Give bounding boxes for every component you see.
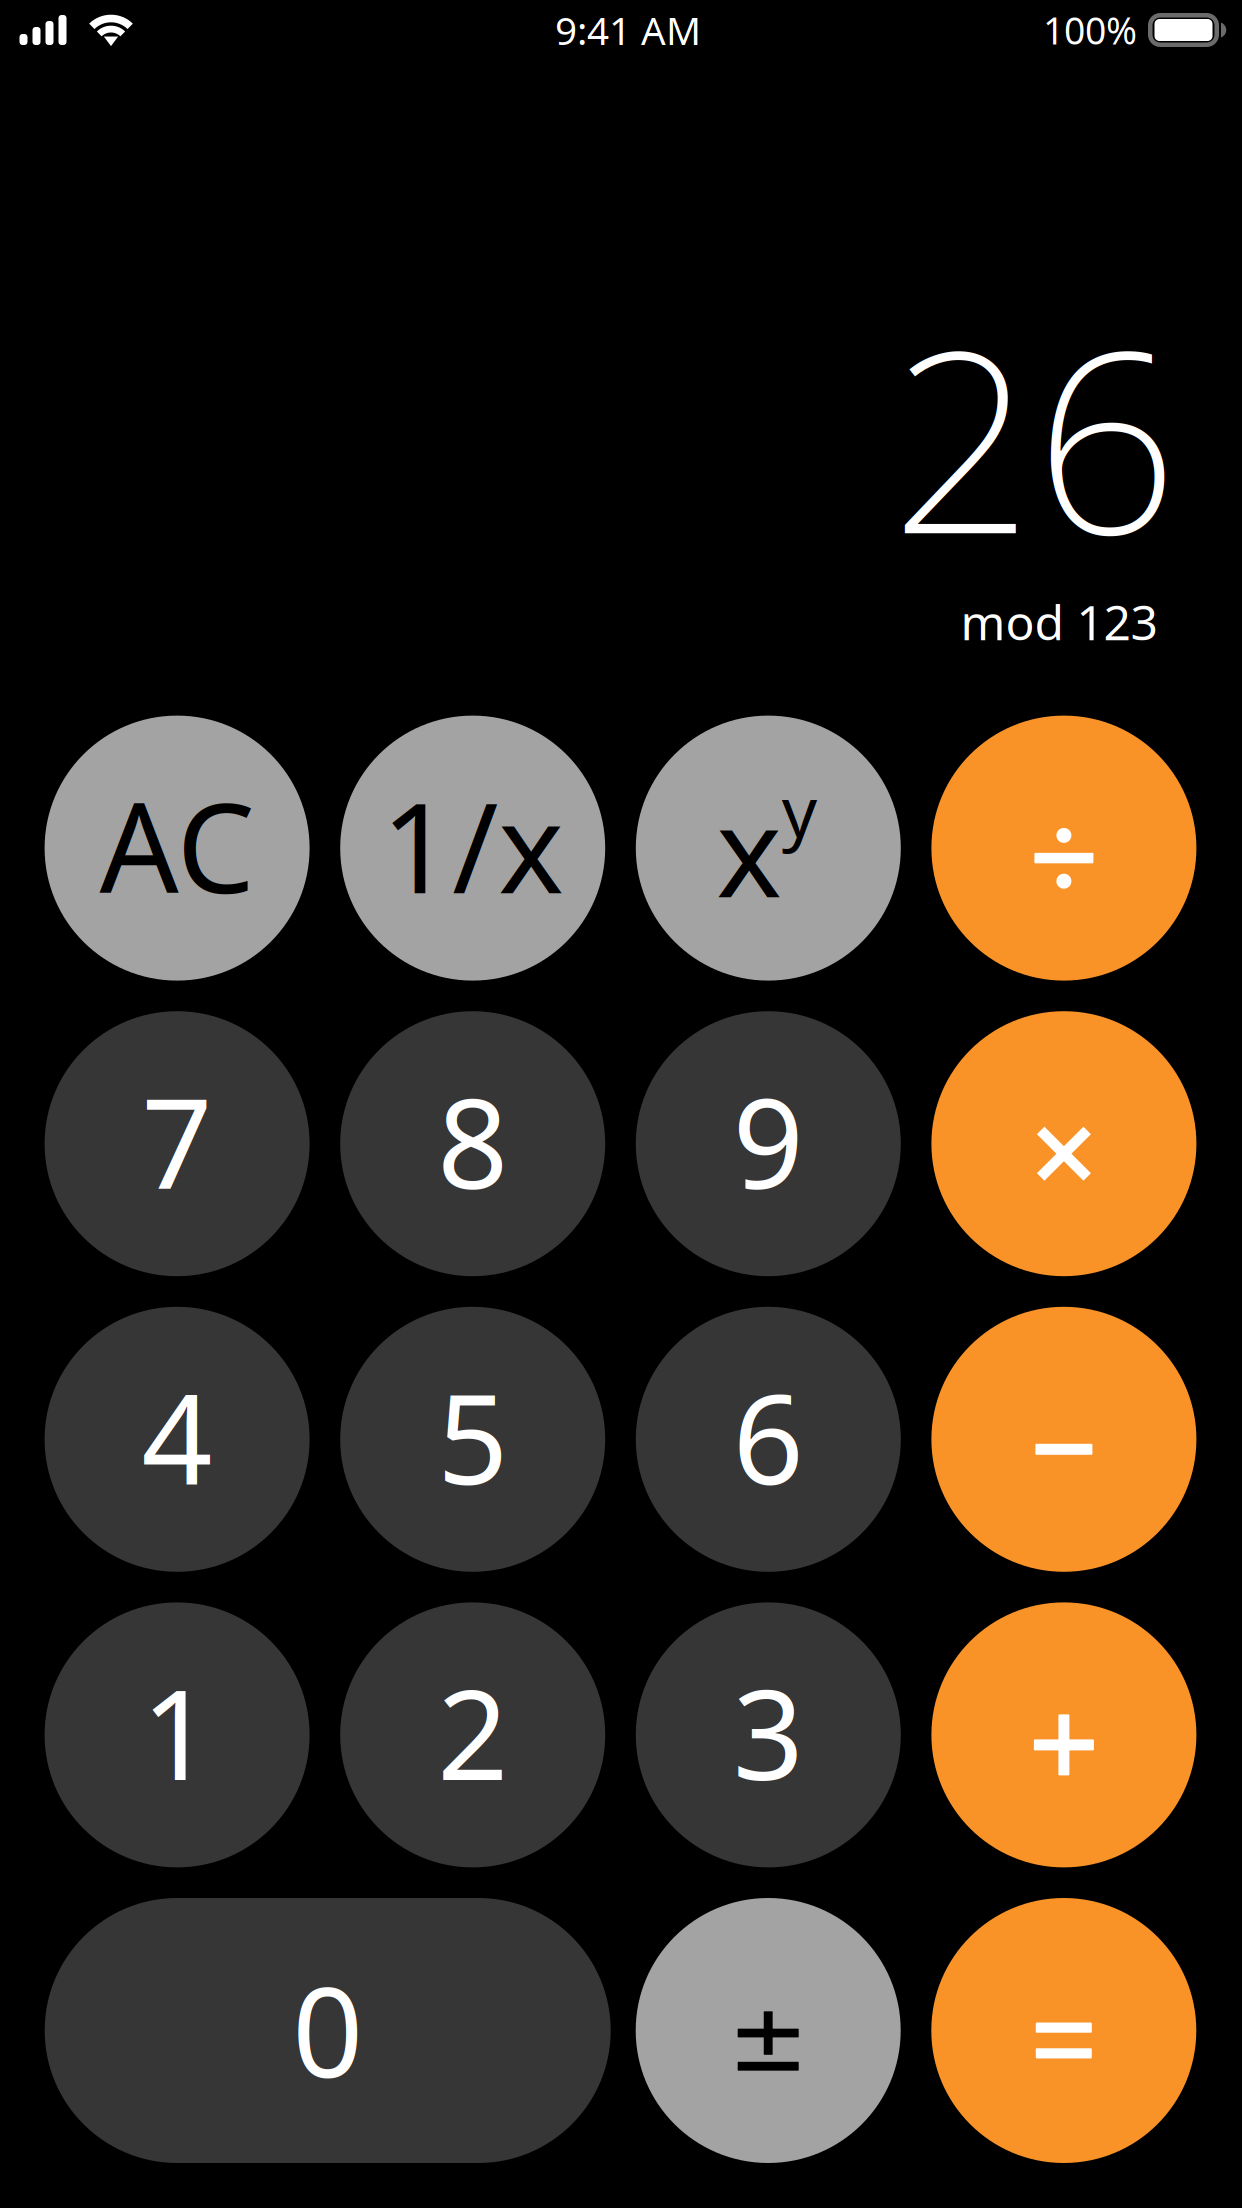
- staticText: mod 123: [960, 590, 1157, 654]
- staticText: x: [716, 767, 782, 931]
- button[interactable]: 1: [45, 1602, 310, 1867]
- staticText: 1/x: [381, 763, 564, 927]
- staticText: 6: [733, 1354, 804, 1519]
- button[interactable]: 1/x: [340, 716, 605, 981]
- button[interactable]: Toggle sign: [636, 1898, 901, 2163]
- button[interactable]: 8: [340, 1011, 605, 1276]
- button[interactable]: 5: [340, 1307, 605, 1572]
- button[interactable]: Subtract: [931, 1307, 1196, 1572]
- staticText: 4: [142, 1354, 213, 1519]
- staticText: 5: [437, 1354, 508, 1519]
- staticText: 0: [292, 1947, 363, 2112]
- staticText: 100%: [1043, 5, 1137, 55]
- staticText: y: [782, 764, 817, 856]
- button[interactable]: 2: [340, 1602, 605, 1867]
- button[interactable]: 6: [636, 1307, 901, 1572]
- button[interactable]: Add: [931, 1602, 1196, 1867]
- button[interactable]: 0: [45, 1898, 611, 2163]
- button[interactable]: Divide: [931, 716, 1196, 981]
- staticText: 8: [437, 1058, 508, 1223]
- button[interactable]: 7: [45, 1011, 310, 1276]
- staticText: 9:41 AM: [555, 4, 701, 56]
- button[interactable]: 3: [636, 1602, 901, 1867]
- button[interactable]: 9: [636, 1011, 901, 1276]
- staticText: AC: [100, 763, 255, 927]
- staticText: 7: [142, 1058, 213, 1223]
- button[interactable]: x: [636, 716, 901, 981]
- button[interactable]: AC: [45, 716, 310, 981]
- staticText: 1: [142, 1650, 213, 1814]
- staticText: 2: [437, 1650, 508, 1814]
- staticText: 9: [733, 1058, 804, 1223]
- button[interactable]: Multiply: [931, 1011, 1196, 1276]
- staticText: 3: [733, 1650, 804, 1814]
- staticText: 26: [890, 268, 1178, 603]
- button[interactable]: 4: [45, 1307, 310, 1572]
- button[interactable]: Equals: [931, 1898, 1196, 2163]
